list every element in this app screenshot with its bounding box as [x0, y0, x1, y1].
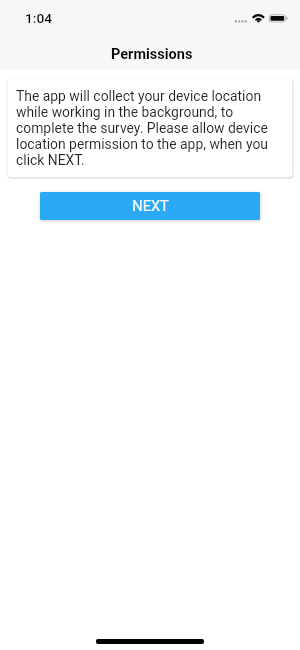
staticText: NEXT — [132, 197, 169, 214]
staticText: The app will collect your device locatio… — [16, 88, 284, 168]
staticText: Permissions — [111, 46, 193, 63]
staticText: 1:04 — [25, 10, 52, 26]
button[interactable]: NEXT — [40, 192, 260, 220]
